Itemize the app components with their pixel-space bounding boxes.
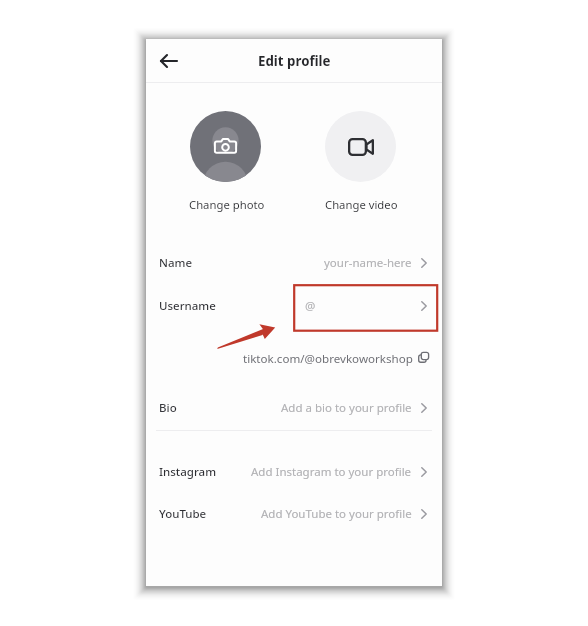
button[interactable]: Change video: [325, 111, 396, 182]
button[interactable]: Bio: [146, 388, 442, 428]
staticText: Change photo: [189, 197, 265, 212]
staticText: Add YouTube to your profile: [261, 506, 412, 522]
button[interactable]: Back: [156, 47, 184, 75]
button[interactable]: Username: [146, 286, 442, 326]
staticText: Add a bio to your profile: [281, 400, 412, 416]
button[interactable]: Name: [146, 243, 442, 283]
staticText: Username: [159, 298, 216, 314]
staticText: Bio: [159, 400, 177, 416]
button[interactable]: YouTube: [146, 494, 442, 534]
button[interactable]: tiktok.com/@obrevkoworkshop: [146, 345, 429, 373]
staticText: tiktok.com/@obrevkoworkshop: [243, 351, 413, 367]
staticText: Edit profile: [258, 52, 331, 70]
staticText: Change video: [325, 197, 398, 212]
staticText: Add Instagram to your profile: [251, 464, 412, 480]
staticText: YouTube: [159, 506, 207, 522]
staticText: Name: [159, 255, 192, 271]
button[interactable]: Instagram: [146, 452, 442, 492]
staticText: Instagram: [159, 464, 217, 480]
staticText: @: [305, 298, 316, 314]
button[interactable]: Change photo: [190, 111, 261, 182]
button[interactable]: Copy profile link: [418, 352, 429, 363]
staticText: your-name-here: [324, 255, 412, 271]
